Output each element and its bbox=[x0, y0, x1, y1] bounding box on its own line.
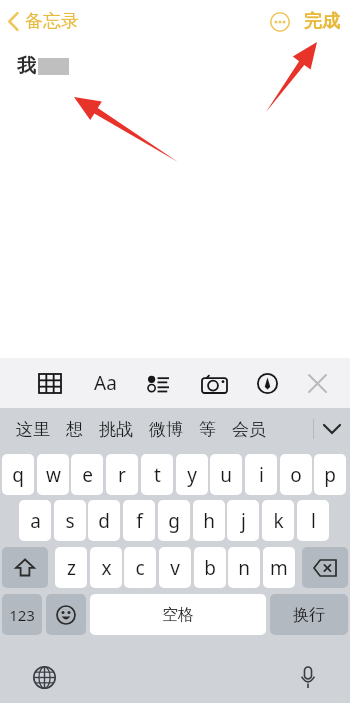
staticText: c bbox=[135, 555, 145, 581]
button[interactable]: More options bbox=[264, 6, 296, 38]
button[interactable]: t bbox=[141, 454, 173, 495]
button[interactable]: p bbox=[314, 454, 346, 495]
staticText: d bbox=[98, 508, 110, 534]
button[interactable]: r bbox=[106, 454, 138, 495]
button[interactable]: b bbox=[194, 547, 226, 588]
button[interactable]: 会员 bbox=[224, 413, 274, 446]
staticText: 微博 bbox=[149, 419, 183, 440]
button[interactable]: Switch language bbox=[24, 657, 64, 697]
staticText: e bbox=[82, 462, 93, 488]
button[interactable]: 等 bbox=[191, 413, 224, 446]
staticText: 这里 bbox=[16, 419, 50, 440]
button[interactable]: Camera bbox=[192, 361, 236, 405]
button[interactable]: n bbox=[228, 547, 260, 588]
button[interactable]: m bbox=[263, 547, 295, 588]
button[interactable]: w bbox=[37, 454, 69, 495]
button[interactable]: g bbox=[158, 500, 190, 541]
button[interactable]: Emoji bbox=[46, 594, 86, 635]
button[interactable]: q bbox=[2, 454, 34, 495]
staticText: h bbox=[203, 508, 215, 534]
button[interactable]: d bbox=[88, 500, 120, 541]
button[interactable]: s bbox=[54, 500, 86, 541]
button[interactable]: 微博 bbox=[141, 413, 191, 446]
button[interactable]: Backspace bbox=[302, 547, 348, 588]
staticText: 空格 bbox=[162, 605, 194, 625]
staticText: 会员 bbox=[232, 419, 266, 440]
button[interactable]: z bbox=[55, 547, 87, 588]
button[interactable]: v bbox=[159, 547, 191, 588]
staticText: i bbox=[259, 462, 264, 488]
staticText: a bbox=[30, 508, 41, 534]
staticText: t bbox=[154, 462, 161, 488]
staticText: 挑战 bbox=[99, 419, 133, 440]
button[interactable]: o bbox=[280, 454, 312, 495]
button[interactable]: u bbox=[210, 454, 242, 495]
button[interactable]: 空格 bbox=[90, 594, 266, 635]
staticText: 我 bbox=[17, 54, 36, 78]
button[interactable]: h bbox=[193, 500, 225, 541]
staticText: 备忘录 bbox=[25, 10, 79, 33]
staticText: u bbox=[220, 462, 232, 488]
staticText: y bbox=[187, 462, 197, 488]
button[interactable]: 想 bbox=[58, 413, 91, 446]
button[interactable]: More candidates bbox=[314, 408, 350, 450]
button[interactable]: c bbox=[124, 547, 156, 588]
staticText: l bbox=[311, 508, 316, 534]
button[interactable]: Checklist bbox=[136, 361, 180, 405]
button[interactable]: 完成 bbox=[300, 5, 350, 38]
staticText: m bbox=[270, 555, 288, 581]
staticText: q bbox=[12, 462, 24, 488]
staticText: v bbox=[170, 555, 180, 581]
staticText: b bbox=[204, 555, 216, 581]
button[interactable]: 挑战 bbox=[91, 413, 141, 446]
button[interactable]: e bbox=[71, 454, 103, 495]
staticText: g bbox=[168, 508, 180, 534]
button[interactable]: x bbox=[90, 547, 122, 588]
button[interactable]: Text format bbox=[83, 361, 127, 405]
staticText: 完成 bbox=[304, 10, 340, 33]
button[interactable]: Table bbox=[28, 361, 72, 405]
button[interactable]: Voice input bbox=[288, 657, 328, 697]
staticText: s bbox=[65, 508, 75, 534]
staticText: f bbox=[136, 508, 143, 534]
staticText: p bbox=[324, 462, 336, 488]
button[interactable]: j bbox=[227, 500, 259, 541]
staticText: k bbox=[273, 508, 284, 534]
staticText: r bbox=[118, 462, 126, 488]
button[interactable]: y bbox=[176, 454, 208, 495]
button[interactable]: Shift bbox=[2, 547, 48, 588]
staticText: n bbox=[238, 555, 250, 581]
staticText: o bbox=[290, 462, 302, 488]
button[interactable]: i bbox=[245, 454, 277, 495]
button[interactable]: l bbox=[297, 500, 329, 541]
staticText: w bbox=[46, 462, 61, 488]
staticText: 等 bbox=[199, 419, 216, 440]
button[interactable]: f bbox=[123, 500, 155, 541]
button[interactable]: a bbox=[19, 500, 51, 541]
staticText: Aa bbox=[94, 370, 117, 396]
button[interactable]: k bbox=[262, 500, 294, 541]
button[interactable]: 这里 bbox=[8, 413, 58, 446]
button[interactable]: 备忘录 bbox=[0, 6, 89, 37]
staticText: 123 bbox=[9, 605, 35, 625]
staticText: z bbox=[67, 555, 76, 581]
button[interactable]: 123 bbox=[2, 594, 42, 635]
button[interactable]: 换行 bbox=[270, 594, 348, 635]
staticText: j bbox=[241, 508, 246, 534]
button[interactable]: Close keyboard bbox=[295, 361, 339, 405]
button[interactable]: Markup bbox=[245, 361, 289, 405]
staticText: 换行 bbox=[293, 605, 325, 625]
staticText: x bbox=[101, 555, 112, 581]
staticText: 想 bbox=[66, 419, 83, 440]
